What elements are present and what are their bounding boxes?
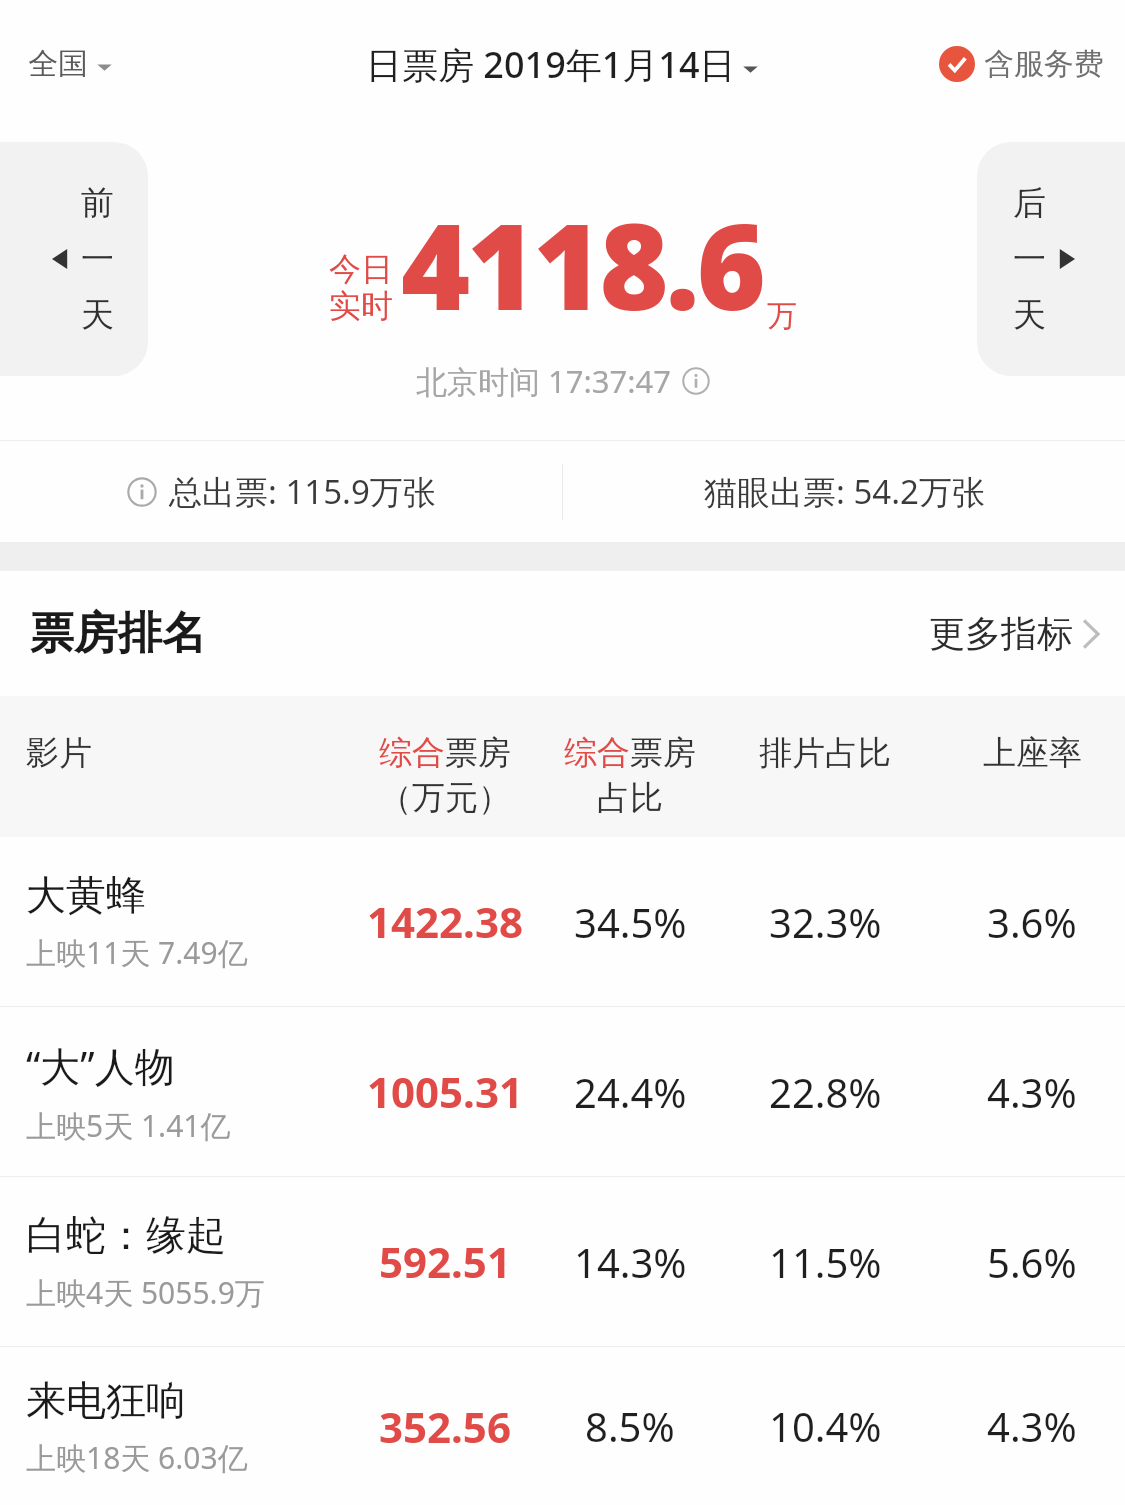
staticText: 上映5天 1.41亿 <box>26 1105 231 1146</box>
staticText: 4.3% <box>987 1065 1077 1119</box>
button[interactable]: 前一天 <box>0 142 148 376</box>
staticText: 14.3% <box>574 1235 687 1289</box>
staticText: 排片占比 <box>759 732 891 774</box>
staticText: 来电狂响 <box>26 1375 186 1425</box>
staticText: 5.6% <box>987 1235 1077 1289</box>
staticText: 8.5% <box>585 1399 675 1453</box>
staticText: 4.3% <box>987 1399 1077 1453</box>
staticText: 592.51 <box>379 1233 511 1290</box>
staticText: 日票房 2019年1月14日 <box>366 40 736 89</box>
button[interactable]: 猫眼出票: 54.2万张 <box>563 441 1125 542</box>
staticText: 1422.38 <box>367 893 523 950</box>
staticText: 32.3% <box>769 895 882 949</box>
button[interactable]: 全国 <box>24 41 118 87</box>
staticText: 352.56 <box>379 1398 511 1455</box>
staticText: 更多指标 <box>929 611 1073 656</box>
staticText: 总出票: 115.9万张 <box>169 469 436 514</box>
staticText: 猫眼出票: 54.2万张 <box>704 469 985 514</box>
button[interactable]: “大”人物 <box>0 1007 1125 1177</box>
staticText: 全国 <box>28 45 88 83</box>
staticText: 上映4天 5055.9万 <box>26 1272 265 1313</box>
staticText: 影片 <box>26 732 92 774</box>
staticText: 综合票房 占比 <box>564 732 696 819</box>
staticText: 10.4% <box>769 1399 882 1453</box>
staticText: 票房排名 <box>30 606 206 661</box>
staticText: 后 一 天 <box>1013 182 1046 336</box>
staticText: 24.4% <box>574 1065 687 1119</box>
staticText: 北京时间 17:37:47 <box>416 360 672 402</box>
button[interactable]: 北京时间 17:37:47 <box>416 360 710 402</box>
staticText: 1005.31 <box>367 1063 523 1120</box>
staticText: 综合票房 （万元） <box>379 732 511 819</box>
staticText: 白蛇：缘起 <box>26 1210 226 1260</box>
staticText: 22.8% <box>769 1065 882 1119</box>
staticText: 万 <box>767 297 797 335</box>
staticText: 11.5% <box>769 1235 882 1289</box>
button[interactable]: 白蛇：缘起 <box>0 1177 1125 1347</box>
staticText: 3.6% <box>987 895 1077 949</box>
staticText: 含服务费 <box>984 45 1104 83</box>
staticText: 大黄蜂 <box>26 870 146 920</box>
staticText: 今日 实时 <box>329 249 393 327</box>
button[interactable]: 后一天 <box>977 142 1125 376</box>
staticText: 4118.6 <box>401 184 763 345</box>
staticText: “大”人物 <box>26 1038 175 1093</box>
staticText: 前 一 天 <box>81 182 114 336</box>
button[interactable]: 含服务费 <box>936 42 1107 86</box>
staticText: 上映18天 6.03亿 <box>26 1437 248 1478</box>
button[interactable]: 日票房 2019年1月14日 <box>362 36 764 93</box>
staticText: 上座率 <box>983 732 1082 774</box>
button[interactable]: 大黄蜂 <box>0 837 1125 1007</box>
button[interactable]: 更多指标 <box>925 607 1105 660</box>
staticText: 上映11天 7.49亿 <box>26 932 248 973</box>
button[interactable]: 总出票: 115.9万张 <box>0 441 562 542</box>
button[interactable]: 来电狂响 <box>0 1347 1125 1505</box>
staticText: 34.5% <box>574 895 687 949</box>
